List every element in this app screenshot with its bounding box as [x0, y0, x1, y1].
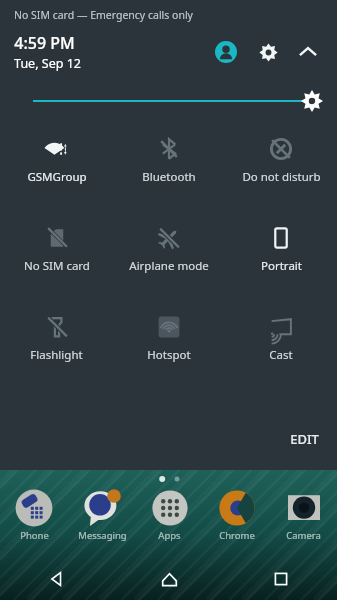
staticText: Portrait — [261, 258, 302, 274]
button[interactable]: Airplane mode — [113, 223, 225, 276]
button[interactable]: Hotspot — [113, 312, 225, 365]
button[interactable]: GSMGroup — [0, 134, 113, 187]
button[interactable]: Do not disturb — [225, 134, 337, 187]
button[interactable]: EDIT — [286, 428, 323, 450]
button[interactable]: Camera — [270, 488, 337, 542]
staticText: Camera — [286, 529, 321, 542]
staticText: Bluetooth — [142, 169, 196, 185]
button[interactable]: Cast — [225, 312, 337, 365]
button[interactable]: User profile — [209, 35, 243, 69]
staticText: Chrome — [219, 529, 255, 542]
button[interactable]: Portrait — [225, 223, 337, 276]
staticText: Messaging — [78, 529, 127, 542]
staticText: Cast — [269, 347, 293, 363]
staticText: EDIT — [290, 430, 319, 448]
button[interactable]: Flashlight — [0, 312, 113, 365]
staticText: No SIM card — Emergency calls only — [14, 8, 193, 22]
button[interactable]: Apps — [136, 488, 203, 542]
button[interactable]: Home — [113, 558, 225, 600]
staticText: Do not disturb — [242, 169, 321, 185]
button[interactable]: Back — [0, 558, 113, 600]
button[interactable]: Recents — [225, 558, 337, 600]
button[interactable]: Chrome — [203, 488, 270, 542]
button[interactable]: Collapse — [291, 35, 325, 69]
staticText: Flashlight — [30, 347, 83, 363]
staticText: GSMGroup — [27, 169, 87, 185]
button[interactable]: Settings — [251, 35, 285, 69]
staticText: 4:59 PM — [14, 32, 75, 54]
button[interactable]: No SIM card — [0, 223, 113, 276]
staticText: Phone — [20, 529, 49, 542]
staticText: Tue, Sep 12 — [14, 55, 81, 72]
button[interactable]: Phone — [0, 488, 68, 542]
button[interactable]: Bluetooth — [113, 134, 225, 187]
staticText: No SIM card — [24, 258, 90, 274]
button[interactable]: Brightness — [0, 86, 337, 116]
staticText: Airplane mode — [129, 258, 209, 274]
staticText: Apps — [158, 529, 181, 542]
staticText: Hotspot — [147, 347, 191, 363]
button[interactable]: Messaging — [68, 488, 136, 542]
